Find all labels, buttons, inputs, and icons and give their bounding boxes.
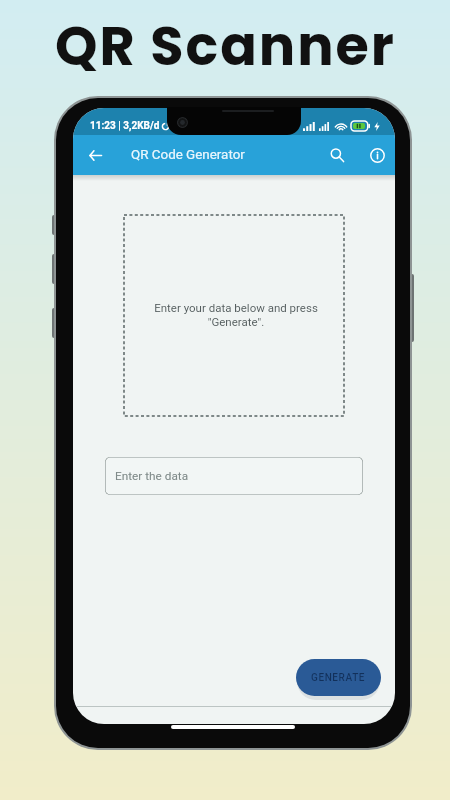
staticText: GENERATE <box>311 672 366 684</box>
staticText: 11:23 | 3,2KB/d <box>90 120 160 132</box>
button[interactable]: Back <box>83 143 107 167</box>
staticText: QR Scanner <box>55 8 396 84</box>
button[interactable]: Enter the data <box>105 457 363 495</box>
staticText: QR Code Generator <box>131 147 245 163</box>
staticText: Enter your data below and press "Generat… <box>154 301 318 329</box>
staticText: Enter the data <box>115 469 189 483</box>
button[interactable]: GENERATE <box>296 659 381 696</box>
button[interactable]: Info <box>363 141 391 169</box>
button[interactable]: Search <box>323 141 351 169</box>
